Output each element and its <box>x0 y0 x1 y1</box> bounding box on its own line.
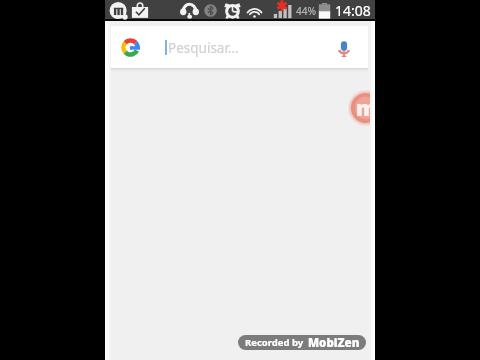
staticText: 44% <box>296 4 316 18</box>
staticText: m <box>356 94 375 123</box>
button[interactable]: Mobizen recorder <box>348 90 375 126</box>
staticText: MobiZen <box>308 335 360 350</box>
button[interactable]: Pesquisar... <box>110 26 368 68</box>
staticText: Recorded by <box>245 336 304 349</box>
staticText: Pesquisar... <box>168 39 239 57</box>
staticText: 14:08 <box>335 1 371 20</box>
